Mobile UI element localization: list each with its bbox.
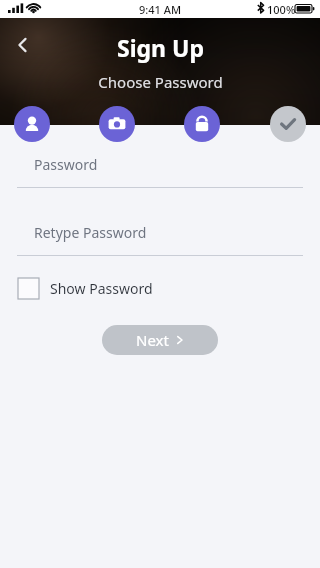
button[interactable]: Show Password [18,278,153,299]
staticText: 100% [267,2,296,17]
button[interactable]: Next [102,325,218,355]
staticText: Sign Up [117,32,204,63]
staticText: Show Password [50,279,153,298]
staticText: 9:41 AM [139,2,182,17]
button[interactable]: Retype Password [17,223,303,256]
staticText: Next [136,330,169,350]
staticText: Choose Password [98,72,223,92]
button[interactable]: Password [17,155,303,188]
button[interactable]: Password [184,106,220,142]
button[interactable]: Done [270,106,306,142]
staticText: Retype Password [34,223,147,242]
button[interactable]: Profile [14,106,50,142]
button[interactable]: Photo [99,106,135,142]
staticText: Password [34,155,98,174]
button[interactable]: Back [6,28,40,62]
